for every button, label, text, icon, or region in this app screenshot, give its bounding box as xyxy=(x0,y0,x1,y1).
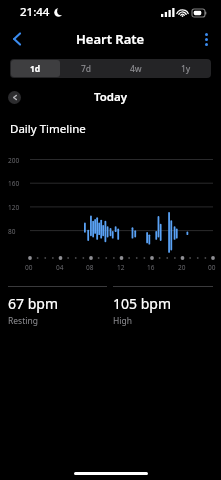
staticText: 12 xyxy=(117,263,125,272)
button[interactable]: 105 bpm xyxy=(113,294,213,327)
staticText: Heart Rate xyxy=(76,30,145,48)
staticText: 1y xyxy=(181,63,191,75)
staticText: High xyxy=(113,315,132,327)
staticText: 00 xyxy=(25,263,33,272)
button[interactable]: 4w xyxy=(111,59,161,78)
staticText: 21:44 xyxy=(20,4,50,20)
button[interactable]: Previous day xyxy=(8,91,21,104)
staticText: Resting xyxy=(8,315,38,327)
staticText: 80 xyxy=(8,227,16,236)
button[interactable]: 67 bpm xyxy=(8,294,107,327)
staticText: 20 xyxy=(178,263,186,272)
staticText: 7d xyxy=(81,63,92,75)
button[interactable]: More options xyxy=(191,24,221,54)
staticText: Daily Timeline xyxy=(10,121,86,137)
staticText: 16 xyxy=(147,263,155,272)
button[interactable]: 1d xyxy=(11,60,60,77)
staticText: 1d xyxy=(30,63,41,75)
staticText: 04 xyxy=(56,263,64,272)
staticText: 08 xyxy=(86,263,94,272)
staticText: 4w xyxy=(130,63,142,75)
staticText: 160 xyxy=(8,179,20,188)
button[interactable]: Back xyxy=(0,24,34,54)
button[interactable]: 7d xyxy=(61,59,111,78)
staticText: Today xyxy=(94,89,128,105)
button[interactable]: 1y xyxy=(161,59,211,78)
staticText: 00 xyxy=(208,263,216,272)
staticText: 105 bpm xyxy=(113,294,171,313)
staticText: 67 bpm xyxy=(8,294,58,313)
staticText: 200 xyxy=(8,156,20,165)
staticText: 120 xyxy=(8,203,20,212)
